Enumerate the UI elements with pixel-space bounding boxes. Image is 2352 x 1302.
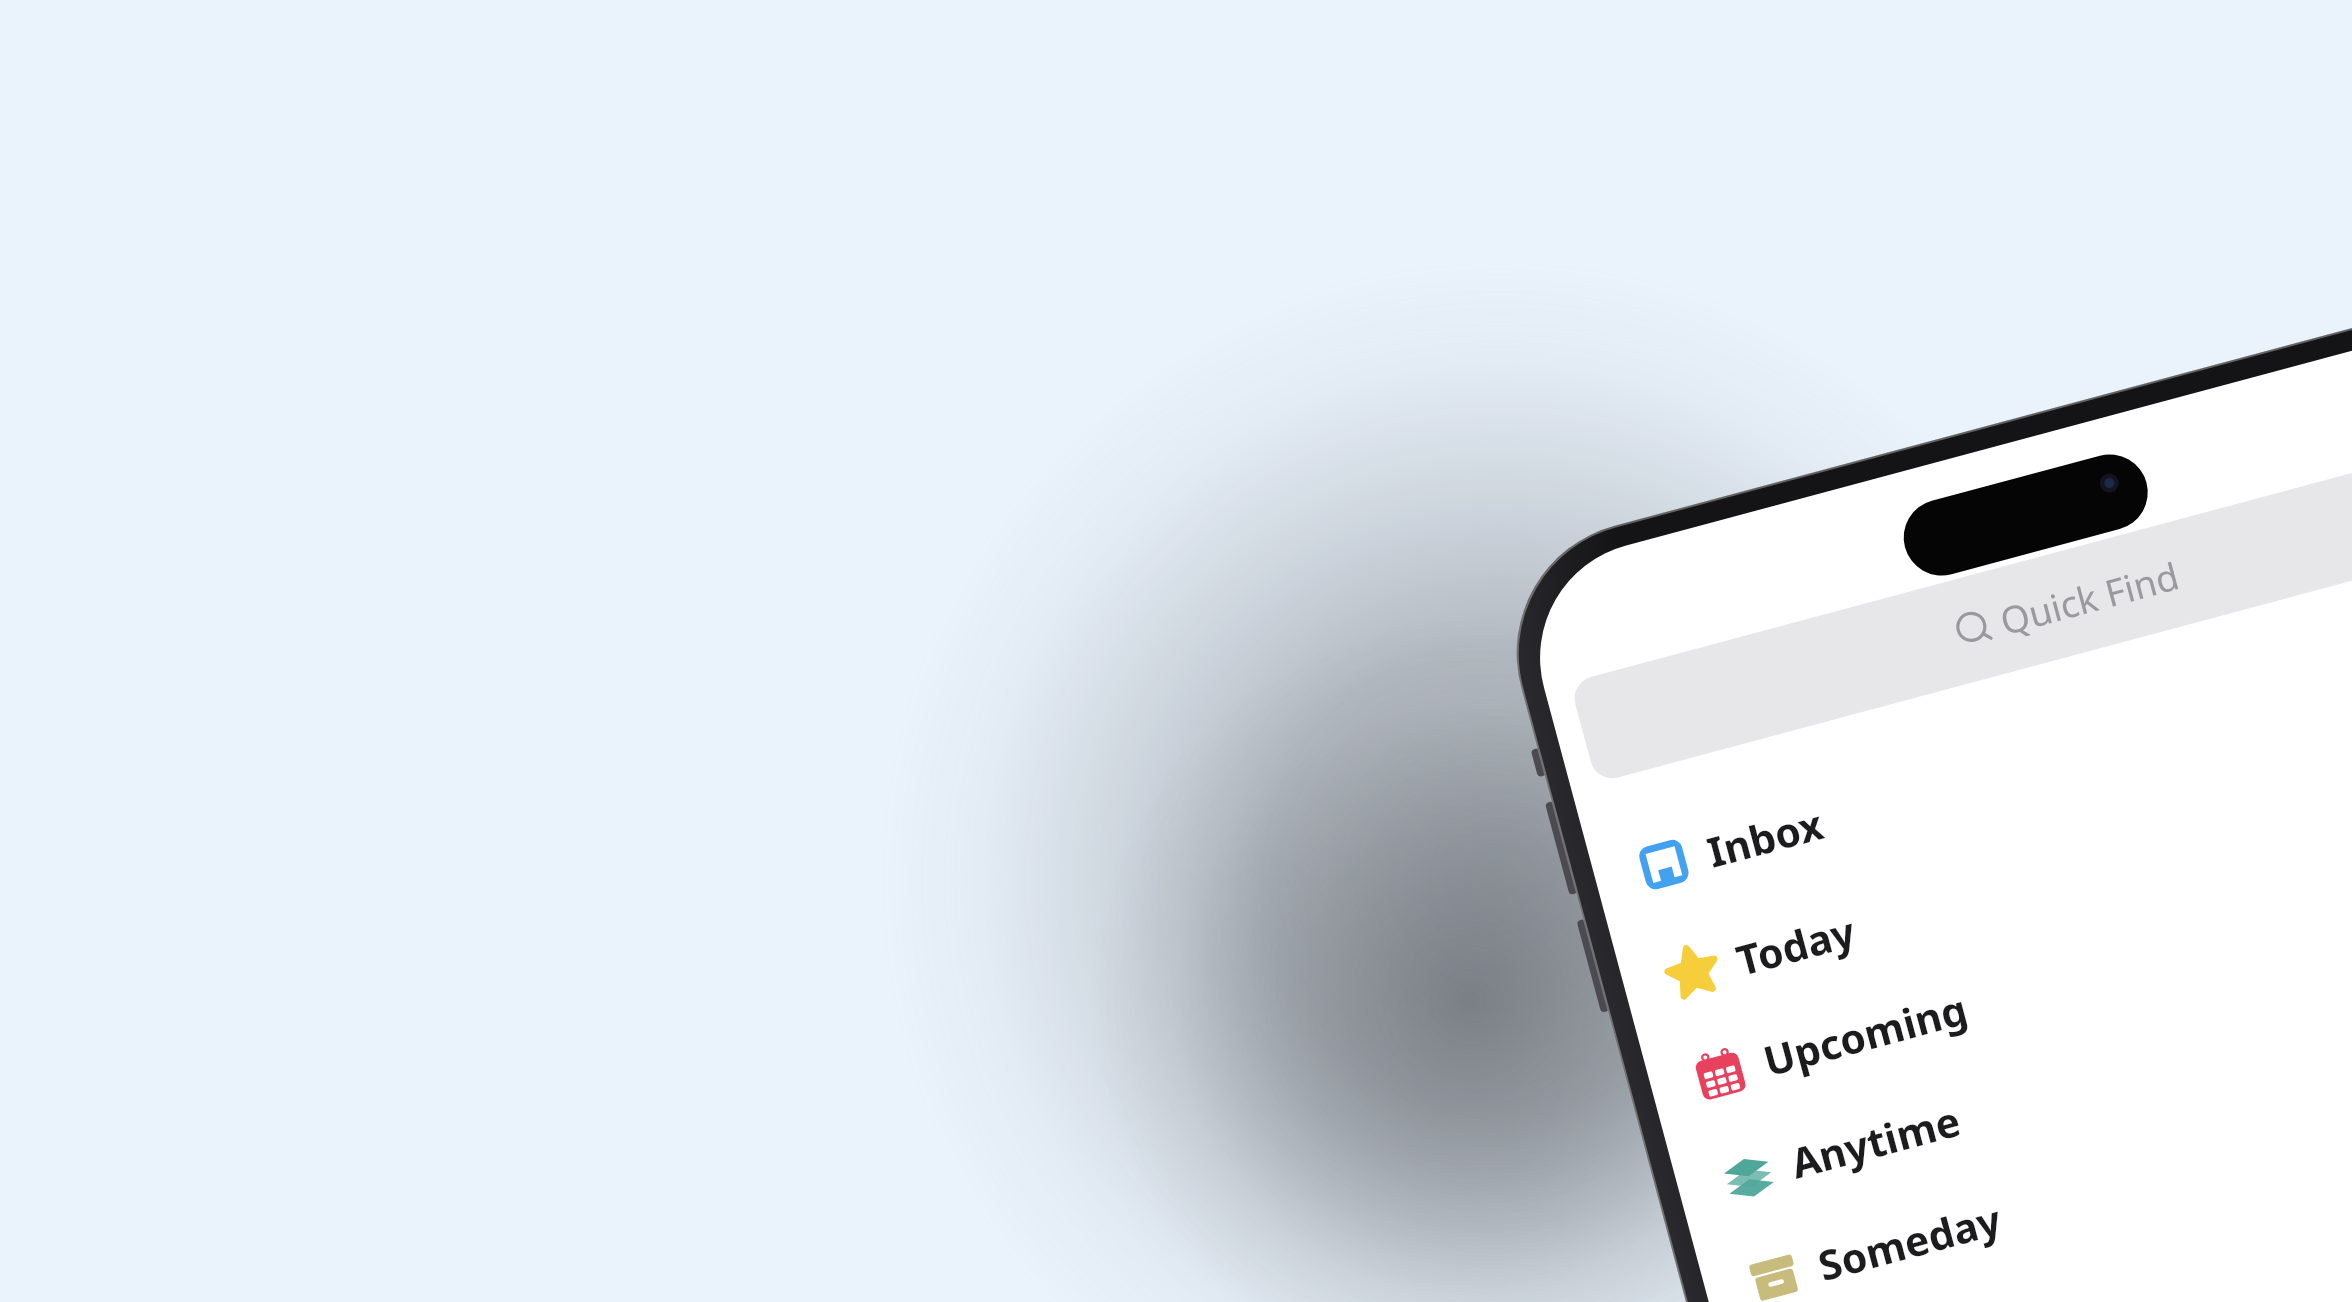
button[interactable]: Things for iPhone promotional image <box>0 0 2352 1302</box>
